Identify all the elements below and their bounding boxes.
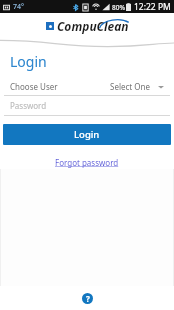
staticText: Password <box>10 100 47 111</box>
staticText: Forgot password <box>55 157 119 168</box>
button[interactable]: Help <box>82 293 93 304</box>
staticText: Select One <box>110 81 150 92</box>
button[interactable]: Password <box>0 96 174 116</box>
staticText: Login <box>10 52 47 71</box>
staticText: 80% <box>112 3 125 12</box>
staticText: CompuClean <box>57 18 129 34</box>
button[interactable]: Login <box>3 124 171 145</box>
staticText: 12:22 PM <box>134 1 171 13</box>
button[interactable]: Choose User <box>0 78 174 96</box>
staticText: Login <box>74 128 100 141</box>
button[interactable]: Forgot password <box>51 156 123 169</box>
staticText: ? <box>86 293 90 304</box>
staticText: Choose User <box>10 81 58 92</box>
staticText: 74° <box>13 2 24 12</box>
